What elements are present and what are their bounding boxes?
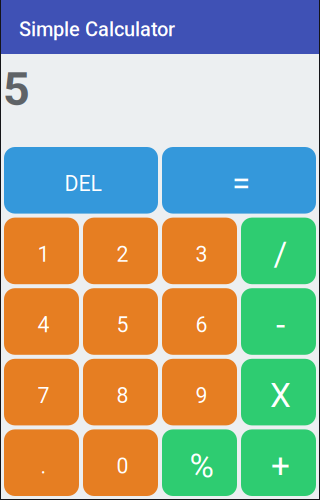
staticText: 6 [195, 312, 207, 337]
staticText: / [273, 235, 287, 274]
button[interactable]: 9 [162, 359, 237, 425]
staticText: . [40, 454, 46, 479]
staticText: DEL [64, 171, 101, 196]
staticText: 4 [37, 312, 49, 337]
button[interactable]: 8 [83, 359, 158, 425]
staticText: 9 [195, 383, 207, 408]
button[interactable]: 1 [4, 218, 79, 284]
button[interactable]: 3 [162, 218, 237, 284]
button[interactable]: 2 [83, 218, 158, 284]
staticText: X [270, 376, 291, 415]
staticText: 5 [3, 62, 30, 117]
staticText: = [232, 164, 250, 203]
button[interactable]: 4 [4, 288, 79, 355]
button[interactable]: + [241, 429, 316, 496]
button[interactable]: / [241, 218, 316, 284]
button[interactable]: . [4, 429, 79, 496]
staticText: 7 [37, 383, 49, 408]
button[interactable]: - [241, 288, 316, 355]
staticText: % [189, 447, 213, 486]
staticText: 2 [116, 242, 128, 267]
staticText: 1 [37, 242, 49, 267]
button[interactable]: % [162, 429, 237, 496]
button[interactable]: X [241, 359, 316, 425]
staticText: 0 [116, 454, 128, 479]
staticText: + [271, 447, 290, 486]
staticText: 5 [116, 312, 128, 337]
button[interactable]: 7 [4, 359, 79, 425]
staticText: 3 [195, 242, 207, 267]
staticText: 8 [116, 383, 128, 408]
button[interactable]: 6 [162, 288, 237, 355]
staticText: Simple Calculator [19, 18, 175, 41]
button[interactable]: 0 [83, 429, 158, 496]
staticText: - [276, 305, 285, 345]
button[interactable]: 5 [83, 288, 158, 355]
button[interactable]: = [162, 147, 316, 214]
button[interactable]: DEL [4, 147, 158, 214]
